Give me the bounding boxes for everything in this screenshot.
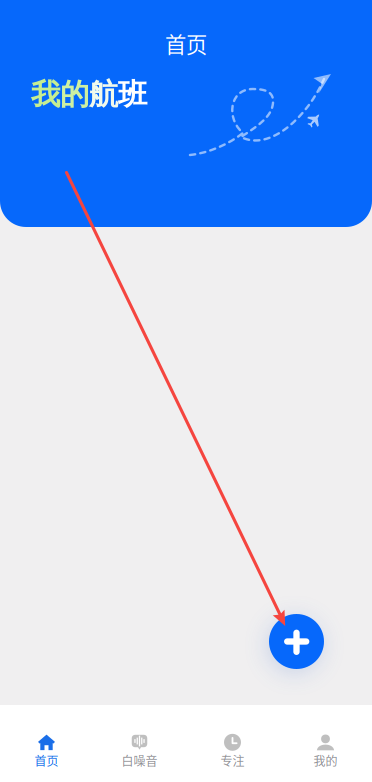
button[interactable]: 白噪音 xyxy=(93,734,186,769)
button[interactable]: 专注 xyxy=(186,734,279,769)
staticText: 专注 xyxy=(220,752,244,769)
staticText: 首页 xyxy=(165,28,207,59)
staticText: 白噪音 xyxy=(121,752,157,769)
staticText: 的 xyxy=(60,76,89,113)
staticText: 我的 xyxy=(313,752,337,769)
staticText: 班 xyxy=(118,76,147,113)
button[interactable]: 首页 xyxy=(0,734,93,769)
staticText: 航 xyxy=(89,76,118,113)
button[interactable]: Add flight xyxy=(269,614,324,669)
staticText: 首页 xyxy=(34,752,58,769)
button[interactable]: 我的 xyxy=(279,734,372,769)
staticText: 我 xyxy=(31,76,60,113)
